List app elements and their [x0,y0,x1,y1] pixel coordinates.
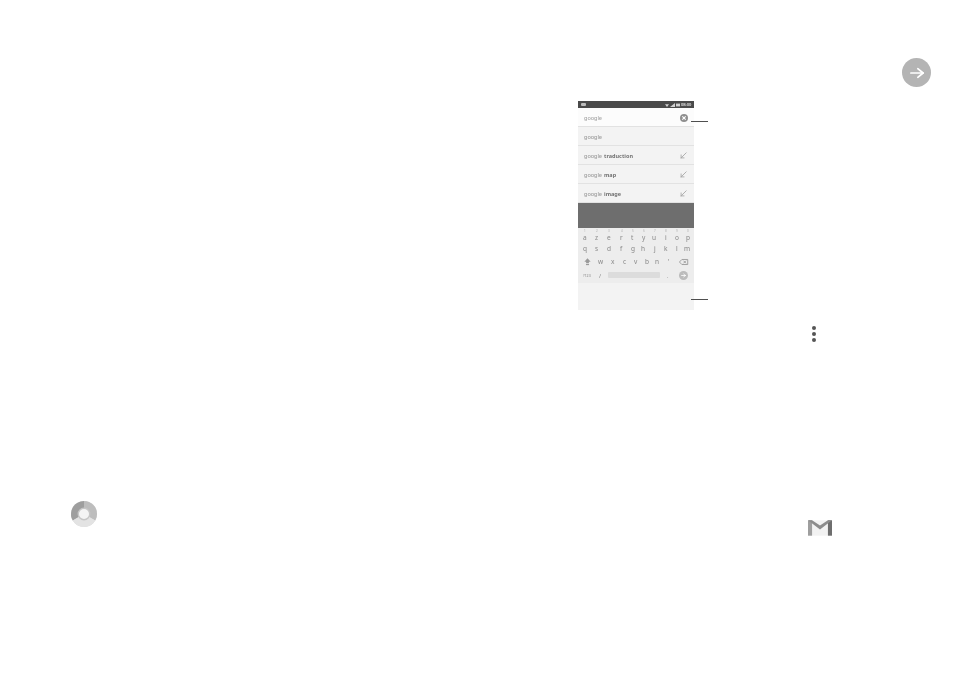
button[interactable]: google [578,165,694,184]
staticText: d [607,244,611,253]
staticText: l [676,244,678,253]
staticText: google [584,190,604,197]
staticText: ' [668,257,670,266]
button[interactable]: 0 [682,229,693,242]
staticText: 2 [596,229,598,233]
staticText: b [645,257,649,266]
staticText: 7 [654,229,656,233]
staticText: 8 [665,229,667,233]
button[interactable]: 2 [591,229,603,242]
button[interactable]: google [578,108,694,127]
staticText: r [620,233,623,242]
button[interactable]: 7 [649,229,660,242]
staticText: c [623,257,627,266]
button[interactable]: / [595,268,606,282]
button[interactable]: k [660,242,671,255]
staticText: map [604,171,617,178]
staticText: m [684,244,691,253]
button[interactable]: Search [673,268,693,282]
staticText: s [595,244,599,253]
button[interactable]: 5 [627,229,638,242]
button[interactable]: 6 [638,229,649,242]
button[interactable]: m [682,242,693,255]
staticText: i [665,233,667,242]
button[interactable]: Chrome [71,501,97,527]
staticText: traduction [604,152,633,159]
staticText: 6 [643,229,645,233]
button[interactable]: h [638,242,649,255]
button[interactable]: f [615,242,627,255]
staticText: . [667,272,669,279]
staticText: 1 [584,229,586,233]
staticText: google [584,171,604,178]
staticText: image [604,190,622,197]
button[interactable]: s [591,242,603,255]
staticText: 5 [632,229,634,233]
button[interactable]: g [627,242,638,255]
button[interactable]: l [671,242,682,255]
button[interactable]: Use suggestion [680,190,687,197]
button[interactable]: Next [902,58,931,87]
button[interactable]: x [607,255,619,268]
button[interactable]: d [603,242,615,255]
staticText: f [620,244,623,253]
button[interactable]: google [578,127,694,146]
button[interactable]: Use suggestion [680,171,687,178]
button[interactable]: Backspace [674,255,693,268]
button[interactable]: q [579,242,591,255]
staticText: ?123 [583,273,591,278]
button[interactable]: w [595,255,607,268]
staticText: q [583,244,587,253]
staticText: 3 [608,229,610,233]
staticText: t [631,233,634,242]
button[interactable]: n [652,255,663,268]
staticText: 0 [687,229,689,233]
staticText: a [583,233,587,242]
button[interactable]: 8 [660,229,671,242]
button[interactable]: google [578,146,694,165]
staticText: v [634,257,638,266]
staticText: k [664,244,668,253]
button[interactable]: Shift [579,255,595,268]
button[interactable]: Gmail [808,516,832,540]
button[interactable]: Use suggestion [680,152,687,159]
staticText: w [598,257,604,266]
button[interactable]: 3 [603,229,615,242]
staticText: g [631,244,635,253]
staticText: y [642,233,646,242]
button[interactable]: 9 [671,229,682,242]
staticText: google [584,152,604,159]
button[interactable]: v [630,255,641,268]
button[interactable]: j [649,242,660,255]
staticText: z [595,233,599,242]
button[interactable]: 1 [579,229,591,242]
button[interactable]: 4 [615,229,627,242]
button[interactable]: b [641,255,652,268]
staticText: p [686,233,690,242]
button[interactable]: . [662,268,673,282]
staticText: google [584,114,602,121]
staticText: u [652,233,657,242]
button[interactable]: google [578,184,694,203]
button[interactable]: c [619,255,630,268]
staticText: j [654,244,656,253]
button[interactable]: ?123 [579,268,595,282]
button[interactable]: More options [803,323,825,345]
staticText: 4 [621,229,623,233]
staticText: n [655,257,660,266]
button[interactable]: ' [663,255,674,268]
staticText: h [641,244,646,253]
staticText: 08:00 [681,102,692,107]
staticText: / [599,272,602,279]
staticText: x [611,257,615,266]
button[interactable]: Clear query [680,114,688,122]
staticText: o [675,233,679,242]
staticText: e [607,233,611,242]
staticText: google [584,133,602,140]
staticText: 9 [676,229,678,233]
